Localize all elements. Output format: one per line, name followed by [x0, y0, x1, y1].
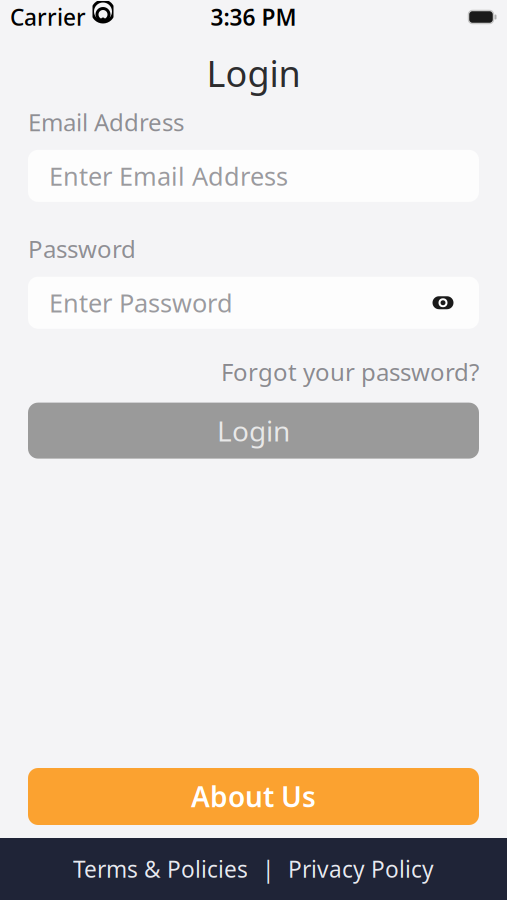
button[interactable]: Terms & Policies: [73, 854, 248, 884]
button[interactable]: About Us: [28, 768, 479, 825]
staticText: Enter Password: [49, 286, 233, 319]
staticText: Enter Email Address: [49, 159, 288, 193]
button[interactable]: Privacy Policy: [288, 854, 434, 884]
staticText: Terms & Policies: [73, 854, 248, 884]
staticText: Login: [206, 49, 300, 97]
staticText: Forgot your password?: [221, 356, 479, 388]
button[interactable]: Show password: [428, 288, 458, 318]
staticText: |: [262, 854, 274, 884]
staticText: Login: [217, 412, 290, 449]
staticText: 3:36 PM: [210, 2, 296, 32]
staticText: About Us: [191, 778, 316, 815]
staticText: Email Address: [28, 106, 184, 138]
staticText: Password: [28, 233, 136, 265]
staticText: Privacy Policy: [288, 854, 434, 884]
button[interactable]: Forgot your password?: [221, 356, 479, 388]
button[interactable]: Login: [28, 403, 479, 459]
staticText: Carrier: [10, 2, 86, 32]
